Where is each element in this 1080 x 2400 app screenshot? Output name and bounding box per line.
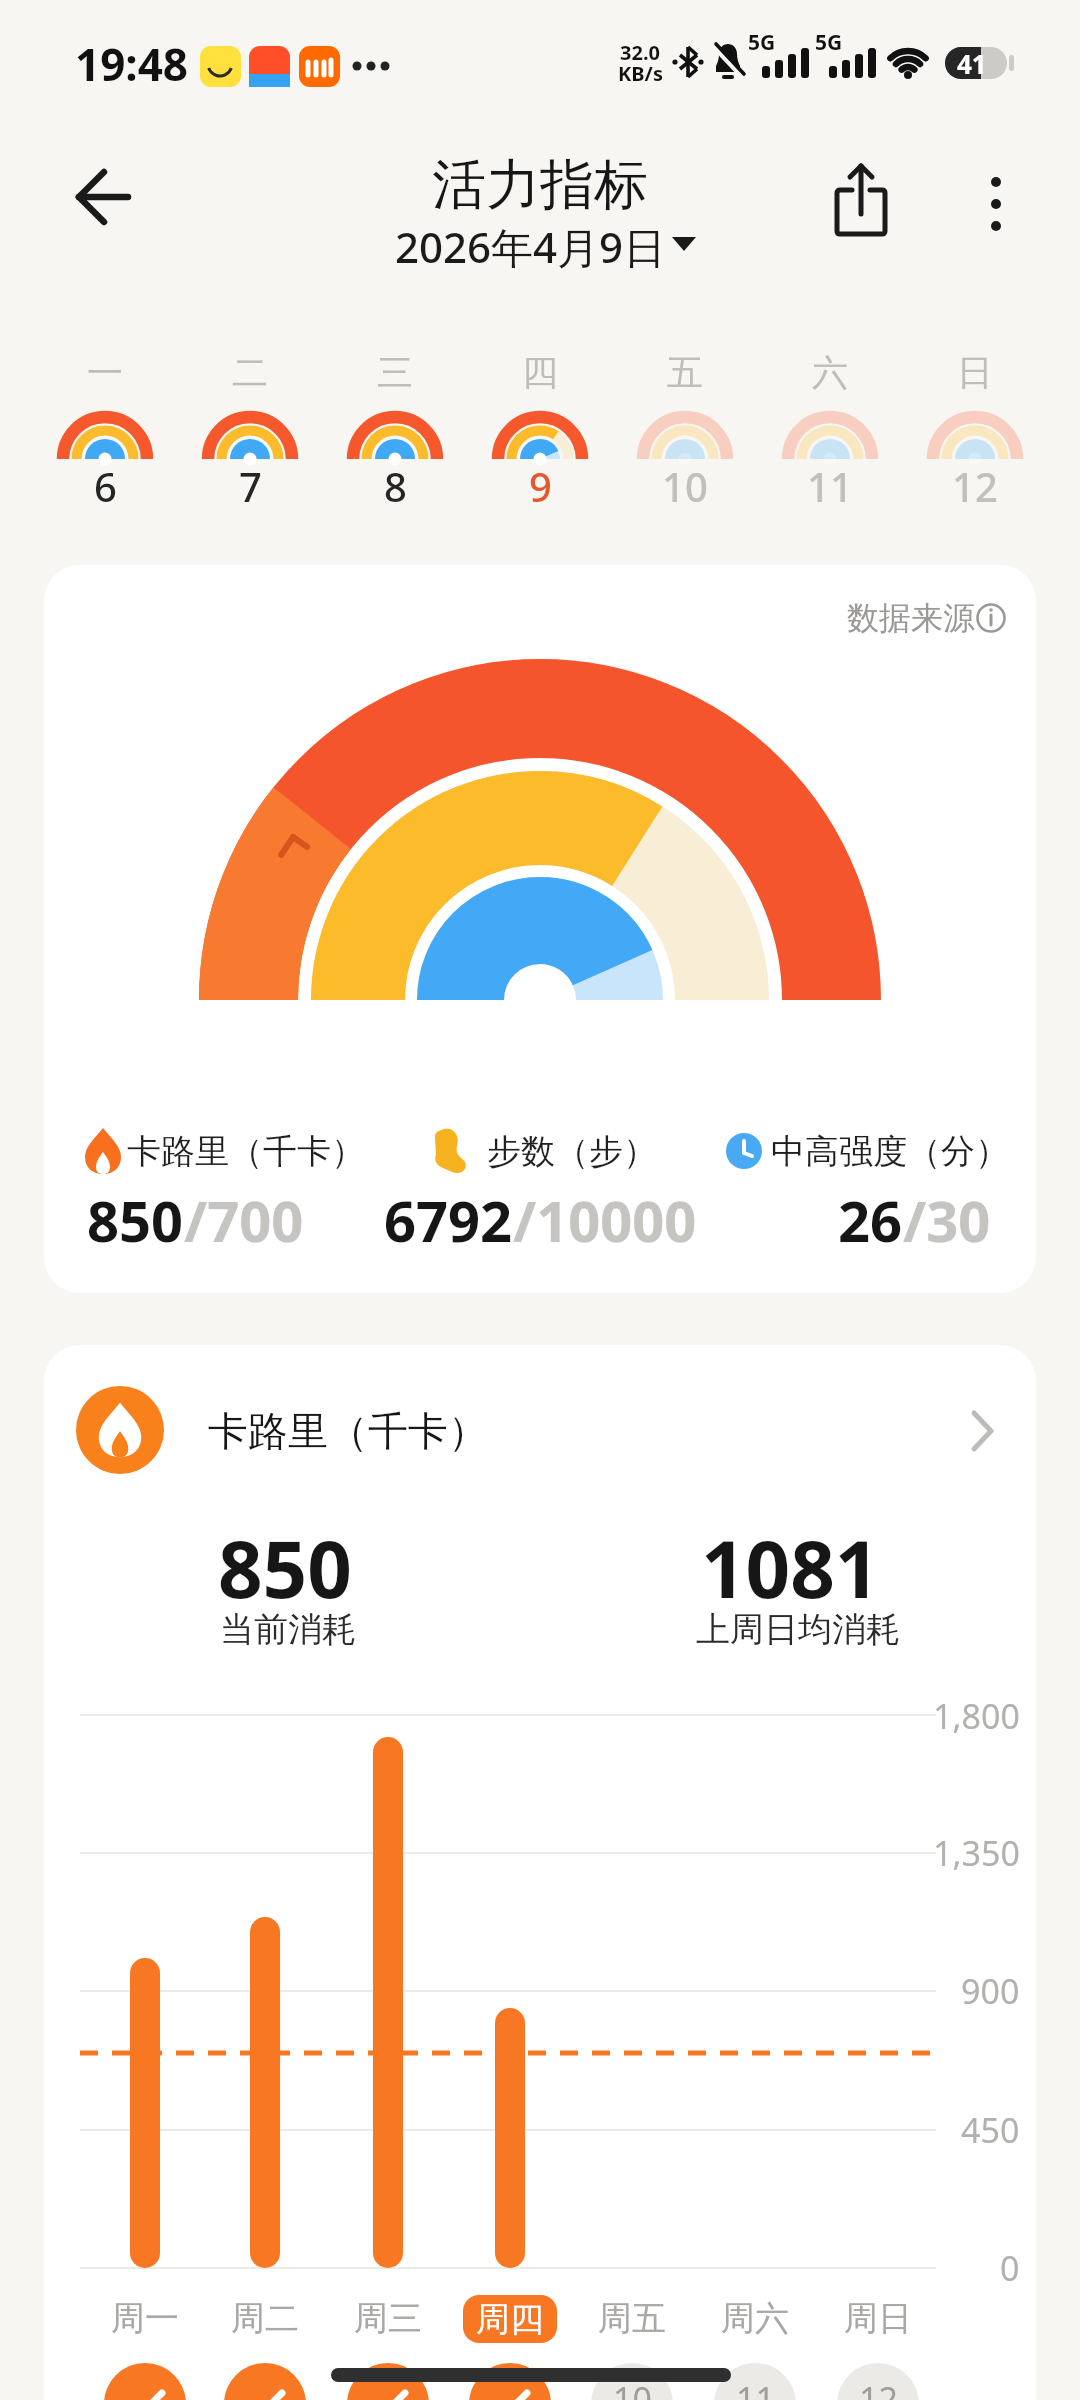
staticText: 周四 <box>476 2298 544 2341</box>
staticText: 12 <box>859 2376 898 2400</box>
button[interactable] <box>909 340 1041 516</box>
staticText: 10 <box>613 2376 652 2400</box>
button[interactable] <box>469 2363 551 2400</box>
staticText: 41 <box>957 46 987 81</box>
staticText: 32.0 <box>620 39 660 66</box>
staticText: 1081 <box>701 1515 880 1621</box>
staticText: 8 <box>384 459 407 513</box>
staticText: 19:48 <box>75 34 189 94</box>
button[interactable] <box>850 594 1010 642</box>
button[interactable] <box>619 340 751 516</box>
staticText: 四 <box>522 350 558 395</box>
staticText: 活力指标 <box>432 151 648 219</box>
staticText: 数据来源 <box>847 598 975 638</box>
button[interactable] <box>184 340 316 516</box>
button[interactable]: 2026年4月9日 <box>370 218 690 274</box>
button[interactable] <box>39 340 171 516</box>
staticText: 6 <box>94 459 117 513</box>
staticText: 1,800 <box>933 1693 1020 1739</box>
button[interactable] <box>714 2363 796 2400</box>
button[interactable] <box>585 2295 679 2343</box>
button[interactable] <box>474 340 606 516</box>
staticText: 一 <box>87 350 123 395</box>
staticText: 9 <box>529 459 552 513</box>
button[interactable] <box>837 2363 919 2400</box>
staticText: 步数（步） <box>487 1130 657 1173</box>
button[interactable] <box>218 2295 312 2343</box>
staticText: /700 <box>184 1182 304 1258</box>
button[interactable] <box>591 2363 673 2400</box>
staticText: 10 <box>662 459 708 513</box>
staticText: 1,350 <box>933 1830 1020 1876</box>
button[interactable] <box>960 160 1032 250</box>
button[interactable] <box>60 1380 1010 1484</box>
staticText: 6792 <box>384 1182 513 1258</box>
staticText: 0 <box>1000 2245 1020 2291</box>
staticText: 卡路里（千卡） <box>208 1406 488 1456</box>
button[interactable] <box>820 160 902 250</box>
staticText: 11 <box>807 459 853 513</box>
staticText: KB/s <box>618 60 663 87</box>
staticText: 卡路里（千卡） <box>127 1130 365 1173</box>
staticText: 7 <box>239 459 262 513</box>
staticText: 周一 <box>111 2297 179 2340</box>
button[interactable] <box>329 340 461 516</box>
staticText: 日 <box>957 350 993 395</box>
staticText: 当前消耗 <box>220 1608 356 1651</box>
staticText: 5G <box>748 28 776 57</box>
staticText: 11 <box>736 2376 775 2400</box>
button[interactable] <box>347 2363 429 2400</box>
button[interactable]: 周四 <box>463 2295 557 2343</box>
staticText: 12 <box>952 459 998 513</box>
staticText: /10000 <box>513 1182 697 1258</box>
staticText: 二 <box>232 350 268 395</box>
staticText: 850 <box>87 1182 184 1258</box>
staticText: 三 <box>377 350 413 395</box>
staticText: 周日 <box>844 2297 912 2340</box>
staticText: 上周日均消耗 <box>696 1608 900 1651</box>
staticText: 周六 <box>721 2297 789 2340</box>
staticText: 周三 <box>354 2297 422 2340</box>
staticText: 900 <box>961 1968 1020 2014</box>
staticText: 五 <box>667 350 703 395</box>
staticText: 5G <box>815 28 843 57</box>
button[interactable] <box>224 2363 306 2400</box>
button[interactable] <box>463 2295 557 2343</box>
staticText: 周二 <box>231 2297 299 2340</box>
button[interactable] <box>98 2295 192 2343</box>
button[interactable] <box>341 2295 435 2343</box>
staticText: 2026年4月9日 <box>395 218 666 274</box>
staticText: 中高强度（分） <box>771 1130 1009 1173</box>
staticText: 26 <box>838 1182 903 1258</box>
staticText: /30 <box>903 1182 991 1258</box>
button[interactable] <box>708 2295 802 2343</box>
staticText: 周五 <box>598 2297 666 2340</box>
staticText: 850 <box>218 1515 352 1621</box>
staticText: 六 <box>812 350 848 395</box>
button[interactable] <box>764 340 896 516</box>
button[interactable] <box>831 2295 925 2343</box>
button[interactable] <box>104 2363 186 2400</box>
button[interactable] <box>48 157 158 237</box>
staticText: 450 <box>961 2107 1020 2153</box>
